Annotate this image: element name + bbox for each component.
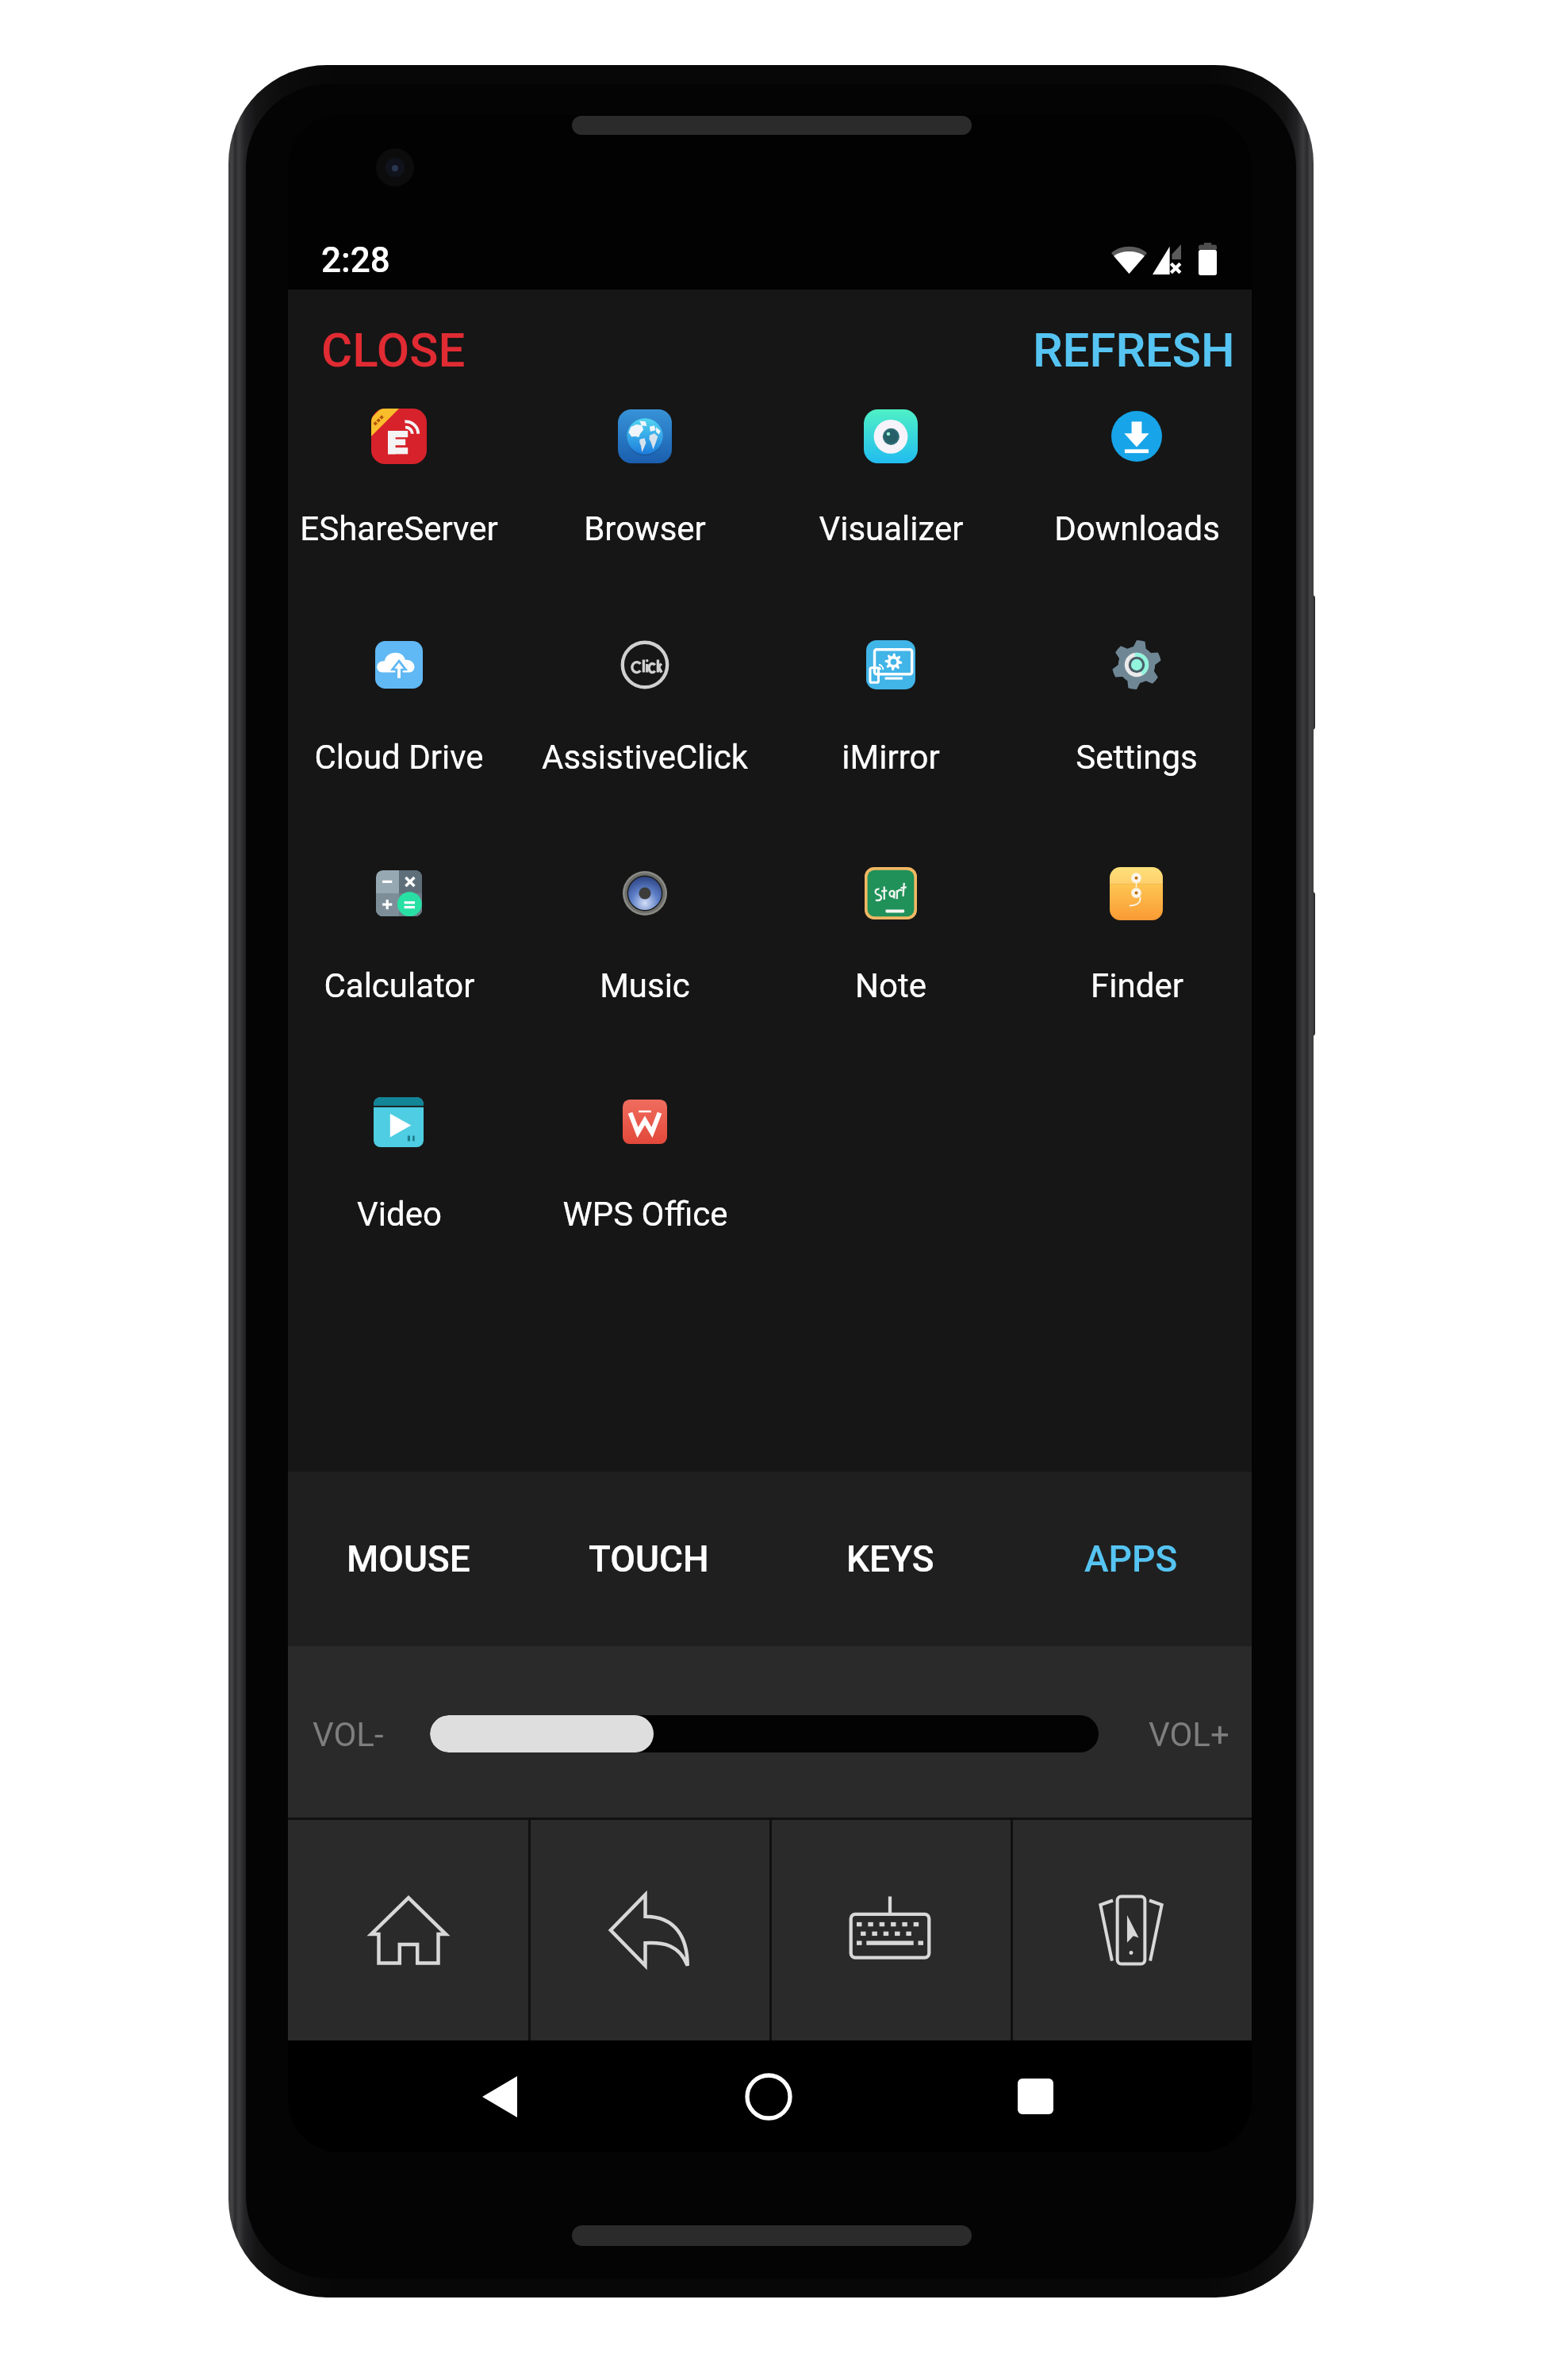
button[interactable]: Calculator [288,814,520,1042]
staticText: Finder [1091,966,1183,1005]
button[interactable]: Settings [1016,585,1252,814]
staticText: Visualizer [819,509,964,548]
button[interactable]: REFRESH [1023,313,1245,387]
button[interactable]: Downloads [1016,357,1252,585]
button[interactable]: Browser [524,357,765,585]
button[interactable]: MOUSE [288,1472,528,1646]
staticText: Cloud Drive [314,738,484,777]
staticText: REFRESH [1033,322,1235,378]
button[interactable]: TOUCH [528,1472,769,1646]
button[interactable]: WPS Office [524,1042,765,1271]
staticText: Calculator [324,966,475,1005]
button[interactable]: Switch device [1011,1820,1252,2040]
staticText: Music [600,966,690,1005]
staticText: 2:28 [321,240,390,281]
button[interactable]: Visualizer [770,357,1011,585]
staticText: WPS Office [562,1195,728,1234]
button[interactable]: Home [288,1820,528,2040]
staticText: MOUSE [347,1537,470,1580]
button[interactable]: Home [700,2057,837,2136]
button[interactable]: VOL+ [1136,1704,1242,1765]
button[interactable]: Note [770,814,1011,1042]
button[interactable]: VOL- [300,1704,397,1765]
button[interactable]: Back [528,1820,769,2040]
staticText: APPS [1084,1537,1178,1580]
staticText: TOUCH [589,1537,709,1580]
staticText: EShareServer [300,509,498,548]
button[interactable] [430,1715,1099,1752]
button[interactable]: APPS [1011,1472,1252,1646]
button[interactable]: Cloud Drive [288,585,520,814]
button[interactable]: Recents [967,2057,1104,2136]
staticText: Note [855,966,926,1005]
staticText: KEYS [846,1537,934,1580]
staticText: AssistiveClick [542,738,748,777]
button[interactable]: KEYS [769,1472,1011,1646]
staticText: VOL+ [1149,1715,1229,1754]
button[interactable]: Back [431,2057,568,2136]
button[interactable]: Keyboard [769,1820,1011,2040]
button[interactable]: AssistiveClick [524,585,765,814]
staticText: CLOSE [321,322,466,378]
staticText: VOL- [313,1715,384,1754]
staticText: Browser [584,509,706,548]
staticText: Downloads [1054,509,1220,548]
button[interactable]: EShareServer [288,357,520,585]
staticText: Settings [1076,738,1198,777]
button[interactable]: CLOSE [312,313,475,387]
staticText: iMirror [842,738,940,777]
button[interactable]: Music [524,814,765,1042]
staticText: Video [357,1195,442,1234]
button[interactable]: Finder [1016,814,1252,1042]
button[interactable]: iMirror [770,585,1011,814]
button[interactable]: Video [288,1042,520,1271]
